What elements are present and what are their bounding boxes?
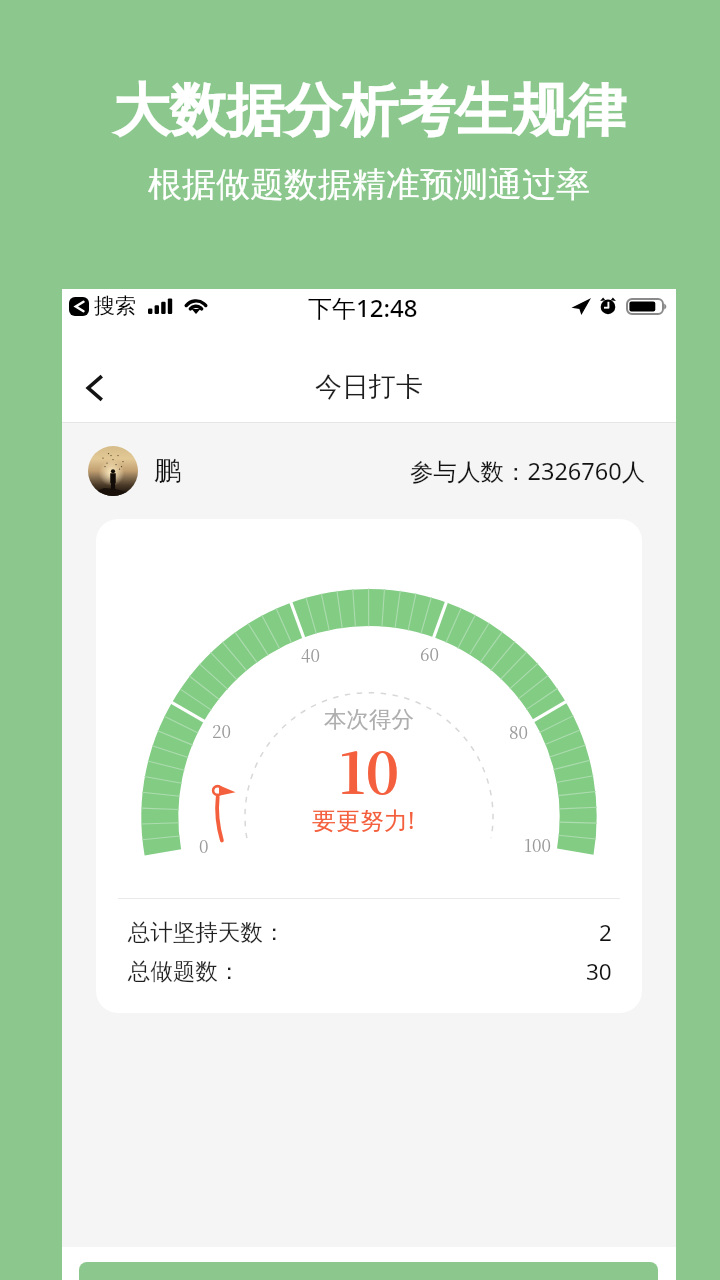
staticText: 总做题数： (128, 957, 241, 985)
staticText: 10 (339, 728, 400, 808)
staticText: 40 (301, 642, 320, 666)
staticText: 20 (212, 718, 231, 742)
button[interactable] (79, 1262, 658, 1280)
button[interactable]: Back (66, 359, 124, 417)
staticText: 下午12:48 (308, 291, 418, 324)
staticText: 搜索 (94, 293, 136, 319)
staticText: 总计坚持天数： (128, 918, 286, 946)
staticText: 鹏 (154, 454, 181, 488)
staticText: 参与人数：2326760人 (410, 455, 646, 487)
staticText: 100 (524, 832, 551, 856)
staticText: 80 (509, 719, 528, 743)
staticText: 今日打卡 (315, 370, 423, 404)
staticText: 60 (420, 641, 439, 665)
staticText: 要更努力! (312, 803, 415, 836)
staticText: 2 (599, 917, 612, 948)
staticText: 0 (199, 833, 209, 857)
staticText: 30 (586, 956, 612, 987)
staticText: 根据做题数据精准预测通过率 (148, 163, 590, 206)
staticText: 大数据分析考生规律 (113, 75, 626, 147)
staticText: 本次得分 (324, 705, 414, 733)
